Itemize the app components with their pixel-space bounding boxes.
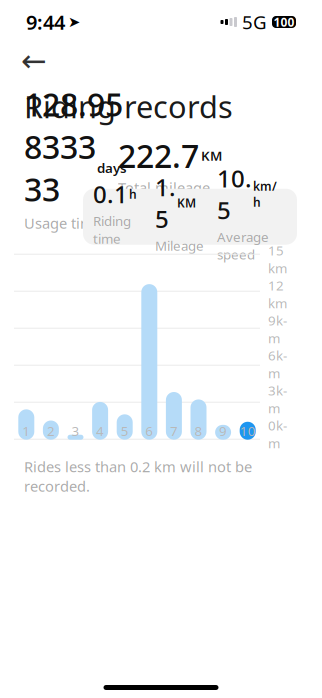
staticText: 8 xyxy=(194,422,202,440)
staticText: 3km xyxy=(268,381,287,417)
staticText: 5 xyxy=(121,422,129,440)
staticText: 10.5 xyxy=(217,162,252,226)
staticText: 0km xyxy=(268,416,287,452)
staticText: 222.7 xyxy=(118,134,199,177)
staticText: 833333 xyxy=(24,125,96,210)
staticText: 6 xyxy=(145,422,153,440)
staticText: h xyxy=(129,186,137,202)
staticText: 10 xyxy=(240,422,256,440)
staticText: 1.5 xyxy=(155,171,176,235)
staticText: 0.1 xyxy=(93,178,128,210)
staticText: 2 xyxy=(47,422,55,440)
staticText: 7 xyxy=(170,422,178,440)
staticText: Average speed xyxy=(217,228,269,263)
staticText: days xyxy=(97,159,127,177)
staticText: 6km xyxy=(268,346,287,382)
button[interactable]: Back xyxy=(14,44,54,78)
staticText: 100 xyxy=(273,14,294,30)
staticText: km/h xyxy=(253,178,277,210)
staticText: 128.95 xyxy=(24,83,123,125)
staticText: 9km xyxy=(268,311,287,347)
staticText: ← xyxy=(21,44,47,78)
staticText: KM xyxy=(201,147,222,164)
staticText: 15km xyxy=(268,241,287,277)
staticText: Riding records xyxy=(24,86,233,127)
staticText: 9 xyxy=(219,422,227,440)
staticText: 1 xyxy=(22,422,30,440)
staticText: 4 xyxy=(96,422,104,440)
staticText: Mileage xyxy=(155,237,204,254)
staticText: Total mileage xyxy=(118,178,210,197)
staticText: Riding time xyxy=(93,212,131,247)
staticText: ➤ xyxy=(68,14,80,30)
staticText: Rides less than 0.2 km will not be recor… xyxy=(24,457,252,496)
staticText: 9:44 xyxy=(26,9,65,35)
staticText: 3 xyxy=(71,422,79,440)
staticText: Usage time xyxy=(24,213,102,233)
staticText: 5G xyxy=(242,10,267,34)
staticText: KM xyxy=(177,195,196,211)
staticText: 12km xyxy=(268,276,287,312)
